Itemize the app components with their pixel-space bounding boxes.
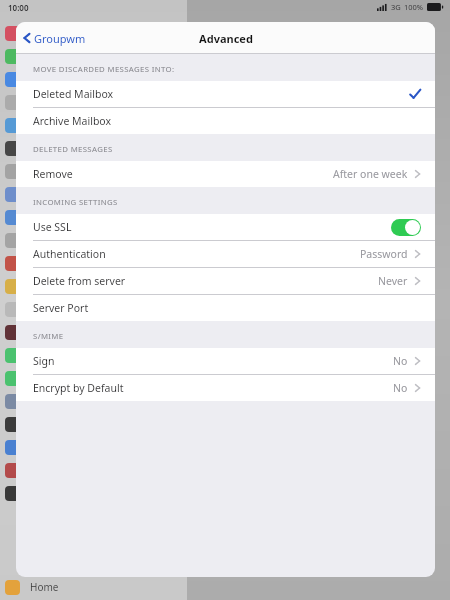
- staticText: Remove: [33, 167, 73, 181]
- staticText: DELETED MESSAGES: [33, 144, 113, 155]
- button[interactable]: Use SSL: [16, 214, 435, 241]
- staticText: INCOMING SETTINGS: [33, 197, 118, 208]
- staticText: Use SSL: [33, 220, 72, 234]
- button[interactable]: Archive Mailbox: [16, 108, 435, 134]
- staticText: Encrypt by Default: [33, 381, 124, 395]
- staticText: Groupwm: [34, 31, 86, 46]
- button[interactable]: Encrypt by Default: [16, 375, 435, 401]
- button[interactable]: Server Port: [16, 295, 435, 321]
- button[interactable]: Remove: [16, 161, 435, 187]
- staticText: Never: [378, 274, 408, 288]
- staticText: Delete from server: [33, 274, 126, 288]
- staticText: Authentication: [33, 247, 106, 261]
- staticText: Deleted Mailbox: [33, 87, 114, 101]
- button[interactable]: Sign: [16, 348, 435, 375]
- button[interactable]: Delete from server: [16, 268, 435, 295]
- staticText: 10:00: [8, 2, 29, 13]
- button[interactable]: Groupwm: [23, 22, 94, 54]
- staticText: S/MIME: [33, 331, 64, 342]
- staticText: No: [393, 354, 408, 368]
- staticText: No: [393, 381, 408, 395]
- staticText: 100%: [404, 2, 424, 12]
- button[interactable]: Deleted Mailbox: [16, 81, 435, 108]
- staticText: Password: [360, 247, 408, 261]
- button[interactable]: Authentication: [16, 241, 435, 268]
- staticText: Advanced: [199, 31, 253, 46]
- staticText: Server Port: [33, 301, 89, 315]
- staticText: Sign: [33, 354, 55, 368]
- staticText: Archive Mailbox: [33, 114, 112, 128]
- staticText: MOVE DISCARDED MESSAGES INTO:: [33, 64, 175, 75]
- staticText: After one week: [333, 167, 408, 181]
- staticText: 3G: [391, 2, 401, 12]
- staticText: Home: [30, 580, 59, 594]
